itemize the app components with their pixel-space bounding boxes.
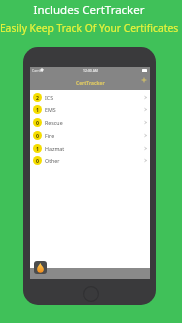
staticText: Rescue [45, 119, 63, 126]
button[interactable]: 0 [30, 154, 150, 167]
staticText: 1 [36, 145, 39, 152]
staticText: EMS [45, 106, 56, 113]
staticText: 0 [36, 132, 39, 139]
button[interactable]: 0 [30, 129, 150, 142]
button[interactable]: 1 [30, 142, 150, 155]
staticText: Easily Keep Track Of Your Certificates [0, 21, 180, 35]
button[interactable]: 0 [30, 116, 150, 129]
staticText: CertTracker [76, 80, 105, 87]
staticText: Includes CertTracker [0, 2, 180, 18]
staticText: ICS [45, 94, 54, 101]
staticText: 2 [36, 94, 39, 101]
staticText: Fire [45, 132, 55, 139]
staticText: Hazmat [45, 145, 65, 152]
staticText: 1 [36, 106, 39, 113]
staticText: 0 [36, 119, 39, 126]
staticText: 12:00 AM [83, 68, 98, 73]
button[interactable]: 2 [30, 91, 150, 104]
button[interactable]: CertTracker app [34, 261, 47, 274]
staticText: Other [45, 157, 60, 164]
staticText: Carrier [32, 68, 44, 73]
button[interactable]: Add certificate [140, 76, 148, 84]
button[interactable]: 1 [30, 103, 150, 116]
staticText: 0 [36, 157, 39, 164]
